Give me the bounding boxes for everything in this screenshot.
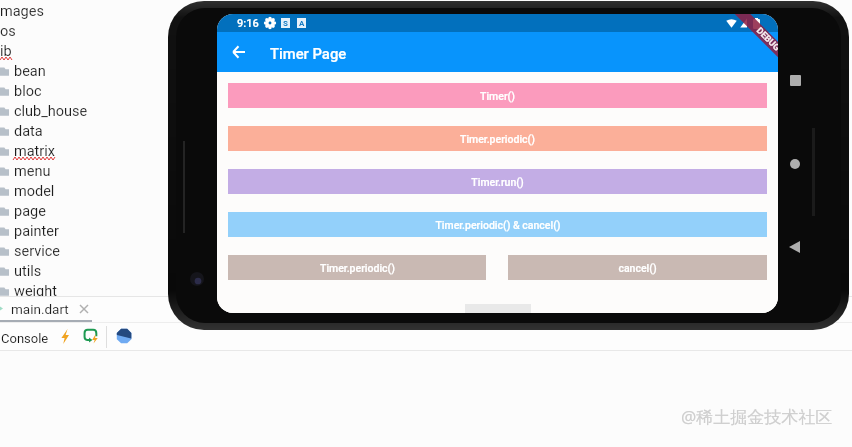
staticText: menu <box>14 163 51 180</box>
button[interactable]: Timer.periodic() <box>228 255 486 280</box>
staticText: @稀土掘金技术社区 <box>681 405 833 428</box>
button[interactable]: matrix <box>0 141 160 161</box>
button[interactable]: Hot reload <box>57 325 73 347</box>
button[interactable]: page <box>0 201 160 221</box>
staticText: Timer.periodic() <box>320 262 395 274</box>
button[interactable]: bean <box>0 61 160 81</box>
button[interactable]: weight <box>0 281 160 301</box>
staticText: Timer() <box>480 90 515 102</box>
button[interactable]: Open Dart DevTools <box>113 325 134 347</box>
button[interactable]: utils <box>0 261 160 281</box>
button[interactable]: os <box>0 21 160 41</box>
staticText: bloc <box>14 83 42 100</box>
button[interactable]: mages <box>0 1 160 21</box>
button[interactable]: model <box>0 181 160 201</box>
button[interactable]: menu <box>0 161 160 181</box>
staticText: Timer.run() <box>471 176 524 188</box>
staticText: matrix <box>14 143 55 160</box>
button[interactable]: Home <box>790 159 800 169</box>
staticText: Timer Page <box>270 45 347 62</box>
button[interactable]: painter <box>0 221 160 241</box>
button[interactable]: service <box>0 241 160 261</box>
staticText: Timer.periodic() & cancel() <box>435 219 561 231</box>
button[interactable]: main.dart <box>10 298 73 320</box>
staticText: data <box>14 123 43 140</box>
button[interactable]: ib <box>0 41 160 61</box>
button[interactable]: Timer.periodic() <box>228 126 767 151</box>
button[interactable]: Recent apps <box>790 75 801 86</box>
staticText: Timer.periodic() <box>460 133 535 145</box>
staticText: bean <box>14 63 46 80</box>
staticText: cancel() <box>618 262 657 274</box>
staticText: DEBUG <box>754 25 778 54</box>
button[interactable]: Timer() <box>228 83 767 108</box>
staticText: service <box>14 243 61 260</box>
button[interactable]: Timer.periodic() & cancel() <box>228 212 767 237</box>
staticText: weight <box>14 283 57 300</box>
staticText: utils <box>14 263 42 280</box>
button[interactable]: bloc <box>0 81 160 101</box>
staticText: page <box>14 203 46 220</box>
button[interactable]: Hot restart <box>81 325 101 347</box>
button[interactable]: club_house <box>0 101 160 121</box>
staticText: mages <box>0 3 44 20</box>
staticText: os <box>0 23 16 40</box>
button[interactable]: Back <box>223 37 253 67</box>
staticText: painter <box>14 223 59 240</box>
button[interactable]: Close tab <box>77 302 90 315</box>
staticText: club_house <box>14 103 88 120</box>
staticText: A <box>299 19 305 28</box>
staticText: Console <box>1 331 49 346</box>
button[interactable]: Timer.run() <box>228 169 767 194</box>
button[interactable]: data <box>0 121 160 141</box>
staticText: model <box>14 183 55 200</box>
staticText: main.dart <box>11 301 69 317</box>
button[interactable]: cancel() <box>508 255 767 280</box>
button[interactable]: Console <box>0 329 50 348</box>
staticText: 9:16 <box>237 17 259 30</box>
staticText: S <box>283 19 288 28</box>
button[interactable]: Back <box>789 241 800 253</box>
staticText: ib <box>0 43 12 60</box>
